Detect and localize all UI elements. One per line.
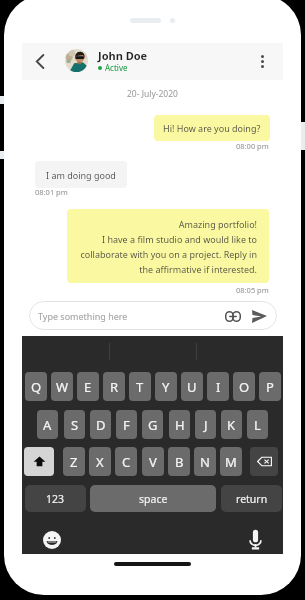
staticText: Amazing portfolio! I have a film studio … [80,218,257,275]
button[interactable]: Backspace [250,447,278,476]
button[interactable]: V [142,447,164,476]
staticText: C [122,453,131,471]
staticText: N [200,453,210,471]
button[interactable]: More options [251,43,273,80]
staticText: T [136,378,144,396]
staticText: Q [31,378,42,396]
staticText: M [225,453,237,471]
button[interactable]: Hi! How are you doing? [154,115,270,141]
button[interactable]: P [259,372,281,401]
button[interactable]: space [90,485,216,512]
button[interactable]: L [247,410,268,439]
staticText: B [175,453,184,471]
button[interactable]: return [221,485,282,512]
staticText: Type something here [38,310,128,322]
staticText: 20- July-2020 [127,88,178,100]
staticText: Active [105,62,128,73]
button[interactable]: H [169,410,190,439]
staticText: 08:05 pm [236,285,269,295]
staticText: R [110,378,119,396]
staticText: D [96,416,106,434]
staticText: 123 [46,492,65,506]
staticText: Hi! How are you doing? [163,122,261,134]
staticText: P [266,378,274,396]
staticText: H [175,416,185,434]
staticText: 08:00 pm [236,141,269,151]
button[interactable]: N [194,447,216,476]
staticText: S [71,416,79,434]
button[interactable]: B [168,447,190,476]
staticText: V [149,453,157,471]
staticText: A [43,416,52,434]
staticText: F [123,416,130,434]
staticText: Z [70,453,78,471]
staticText: W [56,378,69,396]
button[interactable]: Q [25,372,47,401]
button[interactable]: Voice input [244,528,266,550]
button[interactable]: A [37,410,58,439]
button[interactable]: Shift [24,447,54,476]
button[interactable]: T [129,372,151,401]
staticText: X [96,453,104,471]
staticText: J [204,416,208,434]
button[interactable]: U [181,372,203,401]
button[interactable]: C [115,447,137,476]
button[interactable]: I [207,372,229,401]
button[interactable]: J [195,410,216,439]
button[interactable]: Attach link [222,305,244,327]
button[interactable]: G [142,410,163,439]
button[interactable]: Emoji [41,529,63,551]
staticText: L [254,416,261,434]
staticText: Y [162,378,170,396]
staticText: return [236,492,268,506]
button[interactable]: Back [29,43,51,80]
staticText: I [216,378,221,396]
button[interactable]: Y [155,372,177,401]
staticText: U [187,378,197,396]
button[interactable]: W [51,372,73,401]
staticText: O [239,378,250,396]
button[interactable]: X [89,447,111,476]
button[interactable]: O [233,372,255,401]
button[interactable]: K [221,410,242,439]
button[interactable]: Type something here [29,301,277,330]
staticText: G [148,416,158,434]
button[interactable]: E [77,372,99,401]
button[interactable]: F [116,410,137,439]
staticText: E [84,378,92,396]
button[interactable]: D [90,410,111,439]
staticText: 08:01 pm [35,187,68,197]
button[interactable]: Send [247,304,271,328]
button[interactable]: I am doing good [35,161,127,188]
button[interactable]: S [64,410,85,439]
button[interactable]: M [220,447,242,476]
staticText: K [227,416,236,434]
staticText: John Doe [98,48,148,63]
button[interactable]: 123 [25,485,86,512]
button[interactable]: Amazing portfolio! I have a film studio … [67,209,269,283]
staticText: space [139,492,168,506]
button[interactable]: Z [63,447,85,476]
button[interactable]: R [103,372,125,401]
staticText: I am doing good [46,169,116,181]
